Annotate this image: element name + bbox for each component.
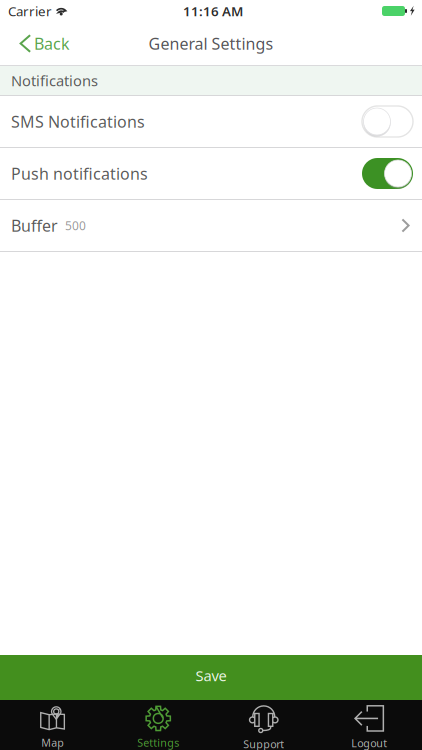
staticText: Back [34, 33, 70, 54]
button[interactable]: Support [211, 700, 316, 750]
button[interactable]: Settings [105, 700, 211, 750]
button[interactable]: Push notifications [0, 148, 422, 200]
staticText: Settings [137, 735, 179, 750]
staticText: Buffer [11, 215, 58, 236]
staticText: Notifications [11, 71, 98, 90]
button[interactable]: Save [0, 655, 422, 700]
staticText: Logout [351, 736, 387, 750]
staticText: SMS Notifications [11, 111, 145, 132]
staticText: Map [41, 735, 64, 750]
staticText: 500 [65, 217, 86, 233]
staticText: General Settings [148, 33, 273, 54]
staticText: Support [243, 737, 284, 750]
button[interactable]: Map [0, 700, 105, 750]
staticText: Carrier [8, 2, 52, 20]
staticText: Save [195, 666, 226, 685]
staticText: Push notifications [11, 163, 148, 184]
button[interactable]: SMS Notifications [0, 96, 422, 148]
staticText: 11:16 AM [183, 2, 243, 20]
button[interactable]: Logout [316, 700, 422, 750]
button[interactable]: Back [0, 22, 80, 65]
button[interactable]: Buffer [0, 200, 422, 252]
